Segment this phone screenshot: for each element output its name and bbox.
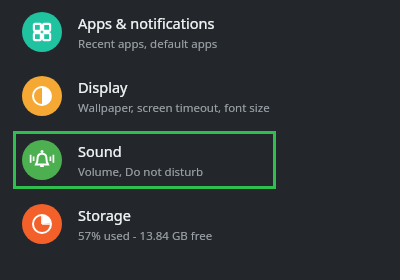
button[interactable]: Storage [0,192,400,256]
button[interactable]: Apps & notifications [0,0,400,64]
staticText: Volume, Do not disturb [78,164,204,180]
staticText: Wallpaper, screen timeout, font size [78,100,270,116]
button[interactable]: Sound [0,128,400,192]
staticText: Storage [78,205,131,225]
staticText: Sound [78,141,122,161]
staticText: Apps & notifications [78,13,215,33]
staticText: Recent apps, default apps [78,36,218,52]
staticText: Display [78,77,128,97]
button[interactable]: Display [0,64,400,128]
staticText: 57% used - 13.84 GB free [78,228,213,244]
